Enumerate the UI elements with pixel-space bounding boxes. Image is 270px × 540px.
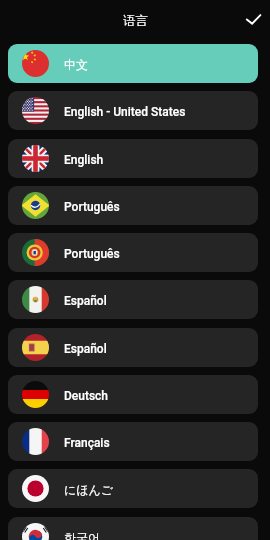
button[interactable]: Español [8, 328, 258, 367]
staticText: Français [64, 436, 110, 450]
button[interactable]: Português [8, 233, 258, 272]
staticText: Português [64, 200, 120, 214]
staticText: Português [64, 247, 120, 261]
staticText: Español [64, 294, 107, 308]
staticText: 语言 [123, 13, 148, 29]
button[interactable]: Français [8, 422, 258, 461]
button[interactable]: 中文 [8, 44, 258, 83]
button[interactable]: Español [8, 280, 258, 319]
button[interactable]: 한국어 [8, 517, 258, 540]
button[interactable]: Deutsch [8, 375, 258, 414]
button[interactable]: Confirm selection [238, 2, 270, 36]
staticText: にほんご [64, 482, 114, 497]
staticText: 中文 [64, 57, 88, 72]
staticText: Español [64, 342, 107, 356]
button[interactable]: Português [8, 186, 258, 225]
button[interactable]: English [8, 139, 258, 178]
button[interactable]: English - United States [8, 91, 258, 130]
staticText: Deutsch [64, 389, 109, 403]
staticText: English [64, 153, 104, 167]
staticText: 한국어 [64, 530, 100, 540]
button[interactable]: にほんご [8, 469, 258, 508]
staticText: English - United States [64, 105, 186, 119]
